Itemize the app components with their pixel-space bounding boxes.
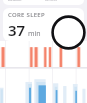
staticText: AWAKE bbox=[8, 0, 22, 2]
staticText: 37 bbox=[8, 20, 26, 40]
button[interactable]: AWAKE bbox=[3, 0, 84, 5]
button[interactable]: Highlighted sleep end time bbox=[51, 15, 86, 50]
staticText: 14 min bbox=[44, 0, 57, 2]
button[interactable]: CORE SLEEP bbox=[3, 8, 84, 41]
staticText: min bbox=[28, 29, 41, 39]
staticText: CORE SLEEP bbox=[8, 11, 45, 19]
